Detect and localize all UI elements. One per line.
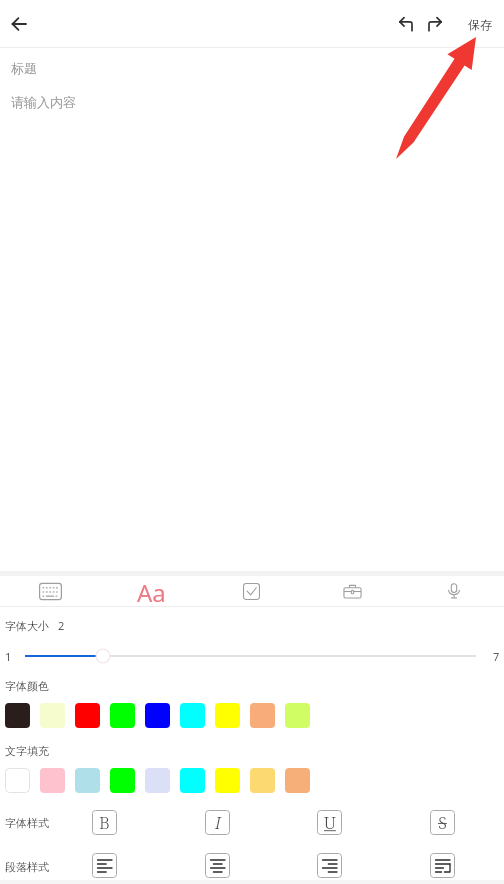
staticText: S <box>438 811 447 834</box>
staticText: 字体大小 <box>5 619 49 633</box>
button[interactable]: Undo <box>388 6 424 42</box>
button[interactable]: Colour <box>110 768 135 793</box>
button[interactable]: Colour <box>40 768 65 793</box>
staticText: 保存 <box>468 17 492 32</box>
button[interactable]: Aa <box>100 576 201 606</box>
staticText: Aa <box>137 576 166 606</box>
button[interactable]: Back <box>0 4 39 44</box>
staticText: 7 <box>493 649 500 664</box>
button[interactable]: Align right <box>317 853 342 878</box>
button[interactable]: Checkbox <box>201 576 302 606</box>
staticText: 2 <box>58 618 65 633</box>
button[interactable]: Colour <box>75 768 100 793</box>
button[interactable]: Colour <box>145 768 170 793</box>
button[interactable]: Colour <box>5 703 30 728</box>
staticText: 请输入内容 <box>11 94 76 110</box>
button[interactable]: Colour <box>215 703 240 728</box>
button[interactable]: Colour <box>40 703 65 728</box>
button[interactable]: Colour <box>250 703 275 728</box>
button[interactable]: 保存 <box>456 4 504 44</box>
button[interactable]: Colour <box>285 703 310 728</box>
staticText: U <box>324 811 336 834</box>
button[interactable]: Attachment <box>302 576 403 606</box>
button[interactable]: S <box>430 810 455 835</box>
button[interactable]: Keyboard <box>0 576 100 606</box>
button[interactable]: Microphone <box>403 576 504 606</box>
button[interactable]: Colour <box>145 703 170 728</box>
staticText: 标题 <box>11 60 37 76</box>
button[interactable]: I <box>205 810 230 835</box>
staticText: 1 <box>5 649 12 664</box>
button[interactable]: U <box>317 810 342 835</box>
button[interactable]: Colour <box>250 768 275 793</box>
button[interactable]: B <box>92 810 117 835</box>
staticText: B <box>99 811 110 834</box>
button[interactable]: Colour <box>5 768 30 793</box>
staticText: 字体样式 <box>5 816 49 830</box>
button[interactable]: Font size slider <box>25 645 504 667</box>
button[interactable]: Colour <box>180 703 205 728</box>
staticText: I <box>215 811 221 834</box>
staticText: 文字填充 <box>5 744 49 758</box>
button[interactable]: Align center <box>205 853 230 878</box>
button[interactable]: Colour <box>215 768 240 793</box>
staticText: 字体颜色 <box>5 679 49 693</box>
button[interactable]: Colour <box>75 703 100 728</box>
button[interactable]: Colour <box>180 768 205 793</box>
staticText: 段落样式 <box>5 860 49 874</box>
button[interactable]: Colour <box>285 768 310 793</box>
button[interactable]: Redo <box>417 6 453 42</box>
button[interactable]: Colour <box>110 703 135 728</box>
button[interactable]: Text wrap <box>430 853 455 878</box>
button[interactable]: Align left <box>92 853 117 878</box>
